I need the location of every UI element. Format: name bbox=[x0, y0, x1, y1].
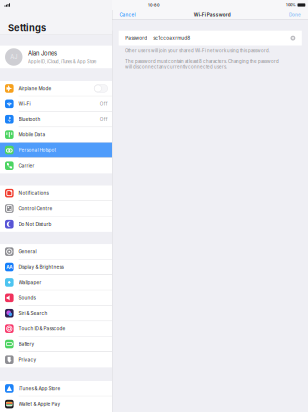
button[interactable]: Wallet & Apple Pay bbox=[0, 396, 112, 412]
button[interactable]: Privacy bbox=[0, 352, 112, 367]
staticText: Sounds bbox=[19, 295, 36, 301]
staticText: Settings bbox=[8, 22, 46, 34]
button[interactable]: Siri & Search bbox=[0, 306, 112, 321]
staticText: sc1ccoaxrmud8 bbox=[153, 35, 190, 41]
button[interactable]: Do Not Disturb bbox=[0, 216, 112, 232]
staticText: Control Centre bbox=[19, 206, 53, 211]
staticText: Off bbox=[100, 116, 108, 122]
staticText: Wallpaper bbox=[19, 280, 42, 285]
staticText: Airplane Mode bbox=[19, 86, 52, 91]
staticText: Alan Jones bbox=[28, 50, 57, 57]
staticText: Siri & Search bbox=[19, 310, 48, 316]
staticText: Touch ID & Passcode bbox=[19, 326, 66, 331]
button[interactable]: Touch ID & Passcode bbox=[0, 321, 112, 337]
button[interactable]: Password bbox=[119, 31, 302, 45]
staticText: Mobile Data bbox=[19, 132, 46, 137]
button[interactable]: Notifications bbox=[0, 186, 112, 201]
button[interactable]: Battery bbox=[0, 337, 112, 352]
staticText: Off bbox=[100, 101, 108, 107]
staticText: Done bbox=[289, 12, 301, 17]
staticText: 100% bbox=[286, 3, 296, 7]
staticText: iTunes & App Store bbox=[19, 386, 61, 391]
button[interactable]: Carrier bbox=[0, 158, 112, 173]
staticText: Wi-Fi bbox=[19, 101, 31, 107]
staticText: Battery bbox=[19, 341, 35, 347]
button[interactable]: Done bbox=[285, 10, 308, 19]
staticText: Cancel bbox=[119, 12, 135, 17]
staticText: Wallet & Apple Pay bbox=[19, 401, 61, 407]
button[interactable]: Cancel bbox=[112, 10, 139, 19]
button[interactable]: Mobile Data bbox=[0, 127, 112, 143]
staticText: Notifications bbox=[19, 190, 49, 196]
staticText: AA bbox=[6, 264, 12, 270]
staticText: Privacy bbox=[19, 357, 37, 362]
button[interactable]: Wi-Fi bbox=[0, 96, 112, 112]
staticText: Personal Hotspot bbox=[19, 147, 57, 153]
staticText: Other users will join your shared Wi-Fi … bbox=[125, 48, 270, 53]
staticText: Wi-Fi Password bbox=[194, 12, 231, 17]
button[interactable]: Wallpaper bbox=[0, 275, 112, 290]
staticText: Display & Brightness bbox=[19, 264, 64, 270]
button[interactable]: AA bbox=[0, 260, 112, 275]
staticText: Carrier bbox=[19, 163, 35, 168]
staticText: 10:80 bbox=[148, 3, 160, 7]
staticText: Bluetooth bbox=[19, 116, 41, 122]
staticText: Do Not Disturb bbox=[19, 221, 52, 227]
button[interactable]: Control Centre bbox=[0, 201, 112, 216]
staticText: AJ bbox=[10, 53, 17, 60]
button[interactable]: General bbox=[0, 244, 112, 260]
button[interactable]: iTunes & App Store bbox=[0, 381, 112, 396]
button[interactable]: Airplane Mode bbox=[0, 81, 112, 96]
staticText: Password bbox=[125, 35, 147, 41]
button[interactable]: AJ bbox=[0, 46, 112, 68]
button[interactable]: Personal Hotspot bbox=[0, 143, 112, 158]
button[interactable]: Bluetooth bbox=[0, 112, 112, 127]
staticText: General bbox=[19, 249, 37, 254]
staticText: The password must contain at least 8 cha… bbox=[125, 59, 279, 69]
staticText: Apple ID, iCloud, iTunes & App Store bbox=[28, 59, 96, 64]
button[interactable]: Sounds bbox=[0, 290, 112, 306]
